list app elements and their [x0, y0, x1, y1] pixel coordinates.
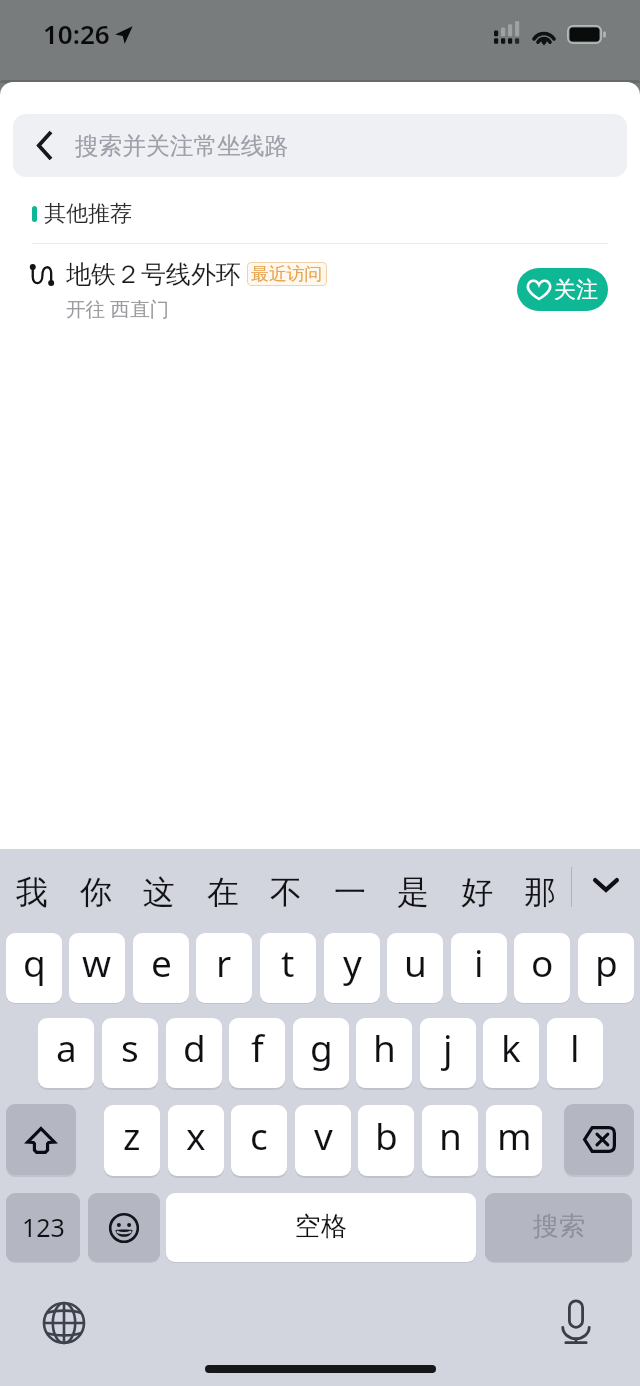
staticText: 搜索	[533, 1210, 585, 1243]
button[interactable]: 我	[0, 855, 64, 929]
button[interactable]: 在	[191, 855, 255, 929]
button[interactable]: 好	[445, 855, 509, 929]
button[interactable]: c	[231, 1105, 287, 1176]
button[interactable]: h	[356, 1018, 412, 1088]
staticText: k	[501, 1022, 521, 1072]
button[interactable]: q	[6, 933, 62, 1003]
button[interactable]: Back	[13, 114, 73, 177]
button[interactable]: Emoji keyboard	[88, 1193, 160, 1262]
staticText: o	[531, 937, 554, 987]
staticText: s	[121, 1022, 139, 1072]
staticText: 我	[16, 872, 48, 912]
staticText: 最近访问	[251, 263, 323, 285]
button[interactable]: d	[166, 1018, 222, 1088]
button[interactable]: k	[483, 1018, 539, 1088]
staticText: 关注	[554, 276, 598, 304]
button[interactable]: x	[168, 1105, 224, 1176]
staticText: n	[439, 1110, 462, 1160]
button[interactable]: t	[260, 933, 316, 1003]
button[interactable]: o	[514, 933, 570, 1003]
staticText: 10:26	[43, 16, 110, 51]
button[interactable]: 你	[64, 855, 128, 929]
staticText: w	[82, 937, 112, 987]
button[interactable]: 搜索	[485, 1193, 632, 1262]
staticText: h	[373, 1022, 396, 1072]
button[interactable]: 空格	[166, 1193, 476, 1262]
button[interactable]: e	[133, 933, 189, 1003]
button[interactable]: 不	[254, 855, 318, 929]
staticText: 空格	[295, 1210, 347, 1243]
button[interactable]: l	[547, 1018, 603, 1088]
staticText: p	[595, 937, 618, 987]
staticText: e	[151, 937, 172, 987]
button[interactable]: 关注	[517, 268, 608, 311]
staticText: v	[314, 1110, 333, 1160]
staticText: 你	[80, 872, 112, 912]
staticText: 是	[397, 872, 429, 912]
staticText: d	[183, 1022, 206, 1072]
button[interactable]: z	[104, 1105, 160, 1176]
staticText: 地铁２号线外环	[66, 259, 241, 290]
button[interactable]: 这	[127, 855, 191, 929]
staticText: l	[570, 1022, 580, 1072]
button[interactable]: g	[293, 1018, 349, 1088]
staticText: u	[404, 937, 427, 987]
button[interactable]: s	[102, 1018, 158, 1088]
staticText: a	[56, 1022, 77, 1072]
staticText: 这	[143, 872, 175, 912]
staticText: 不	[270, 872, 302, 912]
staticText: b	[375, 1110, 398, 1160]
button[interactable]: w	[69, 933, 125, 1003]
staticText: 那	[524, 872, 556, 912]
staticText: c	[250, 1110, 268, 1160]
button[interactable]: 一	[318, 855, 382, 929]
button[interactable]: n	[422, 1105, 478, 1176]
staticText: j	[443, 1022, 453, 1072]
button[interactable]: Voice input	[552, 1298, 600, 1346]
staticText: 一	[334, 872, 366, 912]
staticText: 开往 西直门	[66, 295, 170, 322]
button[interactable]: f	[229, 1018, 285, 1088]
staticText: r	[216, 937, 232, 987]
button[interactable]: j	[420, 1018, 476, 1088]
staticText: 搜索并关注常坐线路	[75, 131, 289, 161]
button[interactable]: Switch keyboard	[40, 1299, 88, 1347]
staticText: 好	[461, 872, 493, 912]
button[interactable]: a	[38, 1018, 94, 1088]
staticText: y	[343, 937, 362, 987]
staticText: x	[186, 1110, 206, 1160]
staticText: q	[23, 937, 46, 987]
button[interactable]: Shift	[6, 1104, 76, 1175]
staticText: m	[497, 1110, 532, 1160]
staticText: 其他推荐	[44, 200, 132, 228]
staticText: z	[123, 1110, 141, 1160]
button[interactable]: Back	[13, 114, 627, 177]
staticText: 123	[22, 1210, 65, 1244]
button[interactable]: y	[324, 933, 380, 1003]
staticText: t	[281, 937, 295, 987]
button[interactable]: m	[486, 1105, 542, 1176]
button[interactable]: 123	[6, 1193, 80, 1262]
button[interactable]: 地铁２号线外环	[0, 244, 640, 332]
button[interactable]: i	[451, 933, 507, 1003]
button[interactable]: 是	[381, 855, 445, 929]
button[interactable]: p	[578, 933, 634, 1003]
button[interactable]: Backspace	[564, 1104, 634, 1175]
button[interactable]: u	[387, 933, 443, 1003]
button[interactable]: b	[358, 1105, 414, 1176]
staticText: f	[251, 1022, 264, 1072]
staticText: i	[474, 937, 484, 987]
staticText: 在	[207, 872, 239, 912]
button[interactable]: v	[295, 1105, 351, 1176]
button[interactable]: 那	[508, 855, 572, 929]
button[interactable]: r	[196, 933, 252, 1003]
staticText: g	[310, 1022, 333, 1072]
button[interactable]: Hide suggestions	[575, 849, 637, 923]
